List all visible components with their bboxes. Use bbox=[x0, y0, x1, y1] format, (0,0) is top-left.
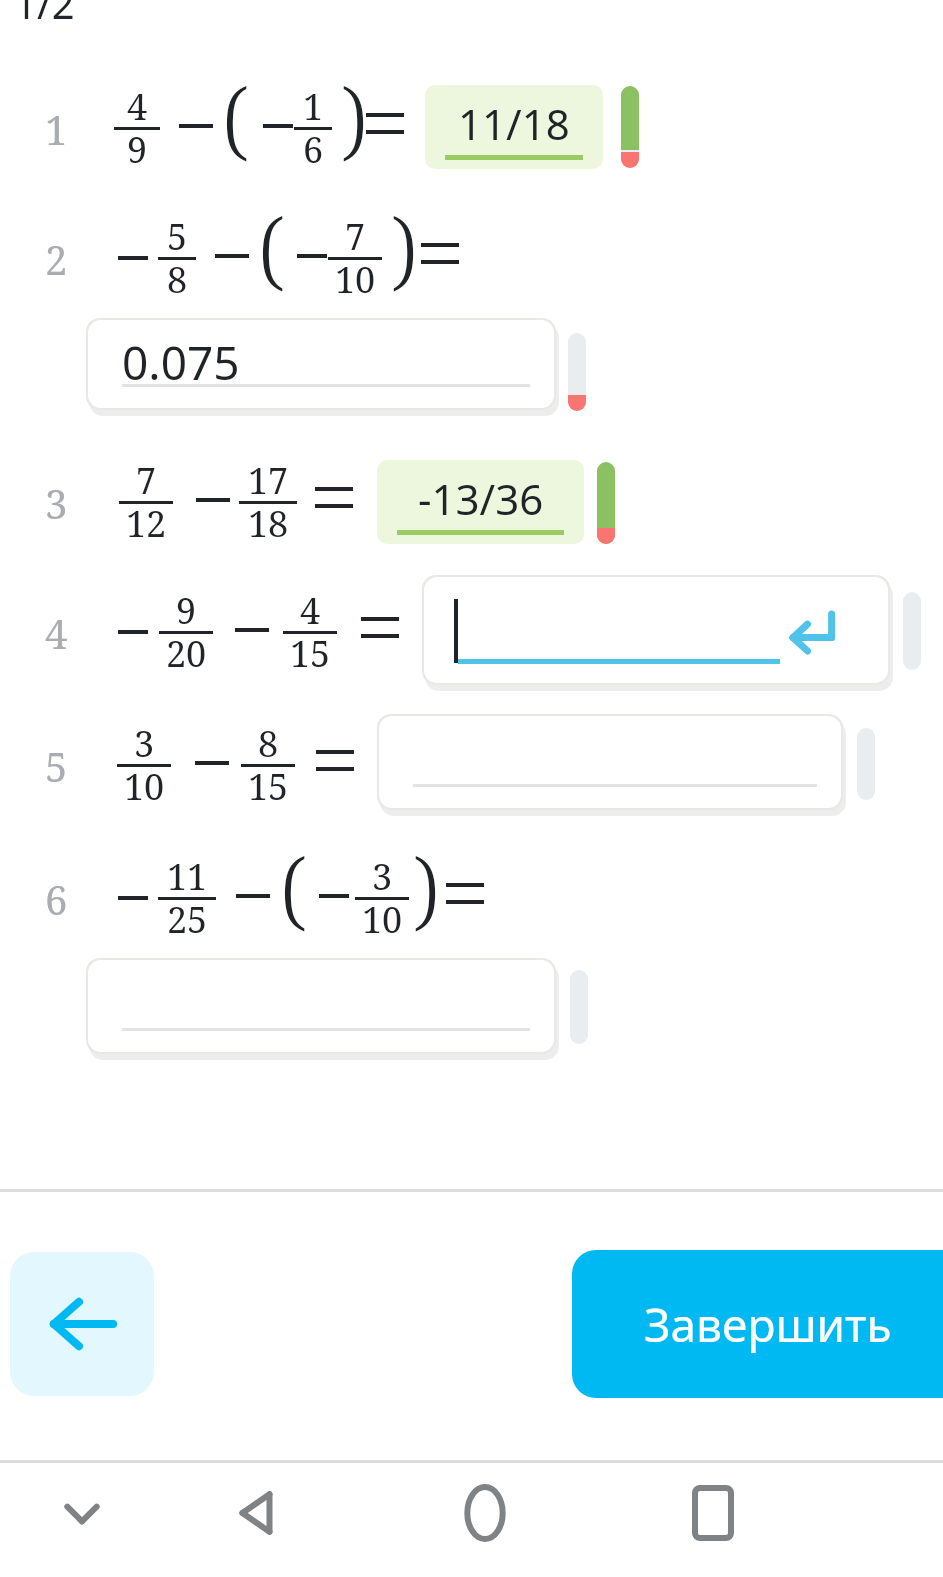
staticText: 17 bbox=[248, 456, 289, 505]
staticText: 1 bbox=[45, 102, 68, 156]
staticText: 8 bbox=[258, 719, 279, 768]
button[interactable]: 11/18 bbox=[425, 85, 603, 169]
staticText: ) bbox=[390, 189, 418, 306]
staticText: 10 bbox=[335, 255, 376, 304]
staticText: 3 bbox=[372, 852, 393, 901]
staticText: 3 bbox=[134, 719, 155, 768]
staticText: 4 bbox=[127, 82, 148, 131]
staticText: ( bbox=[222, 59, 250, 176]
staticText: 10 bbox=[124, 762, 165, 811]
staticText: 1/2 bbox=[14, 0, 75, 30]
button[interactable]: -13/36 bbox=[377, 460, 584, 544]
staticText: -13/36 bbox=[418, 470, 544, 527]
button[interactable]: Завершить bbox=[572, 1250, 943, 1398]
staticText: ) bbox=[412, 829, 440, 946]
staticText: 20 bbox=[166, 629, 207, 678]
button[interactable]: Home bbox=[441, 1469, 529, 1557]
staticText: 11 bbox=[167, 852, 208, 901]
staticText: 11/18 bbox=[458, 95, 570, 152]
staticText: 18 bbox=[248, 499, 289, 548]
staticText: ( bbox=[280, 829, 308, 946]
staticText: 4 bbox=[45, 606, 68, 660]
button[interactable]: 0.075 bbox=[86, 318, 556, 410]
button[interactable]: Back bbox=[213, 1469, 301, 1557]
button[interactable]: Recent apps bbox=[669, 1469, 757, 1557]
staticText: 7 bbox=[136, 456, 157, 505]
button[interactable] bbox=[86, 958, 556, 1054]
staticText: 5 bbox=[45, 739, 68, 793]
staticText: 6 bbox=[303, 125, 324, 174]
staticText: 25 bbox=[167, 895, 208, 944]
staticText: 15 bbox=[290, 629, 331, 678]
staticText: ( bbox=[258, 189, 286, 306]
staticText: 15 bbox=[248, 762, 289, 811]
staticText: 10 bbox=[362, 895, 403, 944]
staticText: 4 bbox=[300, 586, 321, 635]
staticText: 6 bbox=[45, 872, 68, 926]
staticText: ) bbox=[340, 59, 368, 176]
staticText: 9 bbox=[127, 125, 148, 174]
staticText: 12 bbox=[126, 499, 167, 548]
staticText: 1 bbox=[303, 82, 324, 131]
staticText: 5 bbox=[167, 212, 188, 261]
staticText: 9 bbox=[176, 586, 197, 635]
button[interactable] bbox=[377, 714, 843, 810]
staticText: Завершить bbox=[644, 1293, 892, 1356]
button[interactable]: Hide keyboard bbox=[38, 1469, 126, 1557]
staticText: 7 bbox=[345, 212, 366, 261]
staticText: 8 bbox=[167, 255, 188, 304]
button[interactable] bbox=[422, 575, 890, 685]
staticText: 3 bbox=[45, 476, 68, 530]
button[interactable]: Previous page bbox=[10, 1252, 154, 1396]
staticText: 2 bbox=[45, 232, 68, 286]
staticText: 0.075 bbox=[122, 331, 240, 394]
